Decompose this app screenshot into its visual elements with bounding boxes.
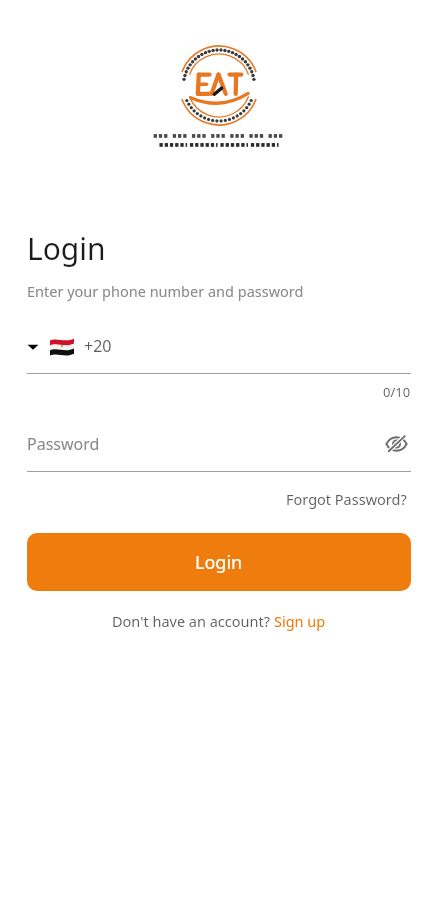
button[interactable]: Login [27, 533, 411, 591]
staticText: Enter your phone number and password [27, 281, 304, 301]
staticText: Sign up [274, 611, 326, 631]
staticText: Don't have an account? [112, 611, 274, 631]
staticText: 0/10 [383, 383, 411, 401]
button[interactable]: Phone number, country code +20 [27, 329, 411, 363]
button[interactable]: Forgot Password? [282, 485, 411, 513]
button[interactable]: Show password [381, 429, 411, 459]
staticText: Forgot Password? [286, 489, 407, 509]
staticText: Login [27, 228, 106, 269]
staticText: Login [195, 550, 243, 575]
button[interactable]: Password [27, 427, 411, 461]
button[interactable]: Sign up [274, 611, 326, 631]
staticText: Password [27, 433, 381, 455]
staticText: +20 [84, 335, 112, 357]
